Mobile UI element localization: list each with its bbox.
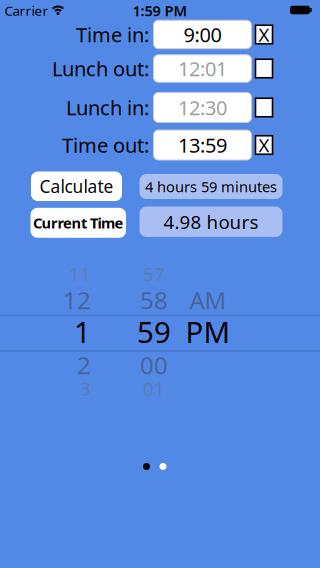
- staticText: Lunch out:: [52, 55, 149, 82]
- staticText: 12: [63, 284, 91, 316]
- button[interactable]: 9:00: [153, 20, 251, 49]
- staticText: AM: [189, 284, 226, 316]
- button[interactable]: 12:01: [153, 55, 251, 82]
- staticText: 1:59 PM: [132, 1, 187, 20]
- staticText: 4 hours 59 minutes: [145, 177, 277, 196]
- button[interactable]: Calculate: [31, 172, 122, 201]
- staticText: 1: [74, 312, 91, 351]
- staticText: 57: [143, 262, 165, 286]
- staticText: Lunch in:: [66, 94, 149, 121]
- button[interactable]: 12:30: [153, 92, 251, 122]
- staticText: 01: [143, 376, 165, 401]
- staticText: 11: [69, 262, 91, 286]
- staticText: Calculate: [39, 175, 113, 198]
- staticText: X: [258, 22, 269, 47]
- staticText: 13:59: [178, 132, 227, 158]
- staticText: 3: [80, 376, 91, 401]
- staticText: Carrier: [4, 2, 48, 19]
- staticText: Current Time: [33, 213, 123, 233]
- staticText: Time out:: [62, 132, 149, 158]
- staticText: Time in:: [76, 21, 149, 48]
- staticText: 58: [140, 284, 168, 316]
- button[interactable]: Time out checkbox: [255, 136, 272, 154]
- button[interactable]: Time in checkbox: [255, 25, 272, 44]
- button[interactable]: Page control: [143, 463, 166, 470]
- staticText: 00: [140, 349, 168, 381]
- staticText: 12:01: [178, 55, 227, 82]
- button[interactable]: Lunch out checkbox: [255, 59, 272, 78]
- staticText: 4.98 hours: [163, 209, 258, 234]
- button[interactable]: Lunch in checkbox: [255, 98, 272, 117]
- staticText: X: [258, 133, 269, 157]
- button[interactable]: 13:59: [153, 130, 251, 160]
- staticText: 12:30: [178, 94, 227, 121]
- staticText: 59: [137, 312, 171, 351]
- staticText: PM: [185, 312, 230, 351]
- button[interactable]: Current Time: [30, 208, 126, 238]
- staticText: 2: [77, 349, 91, 381]
- staticText: 9:00: [183, 21, 221, 48]
